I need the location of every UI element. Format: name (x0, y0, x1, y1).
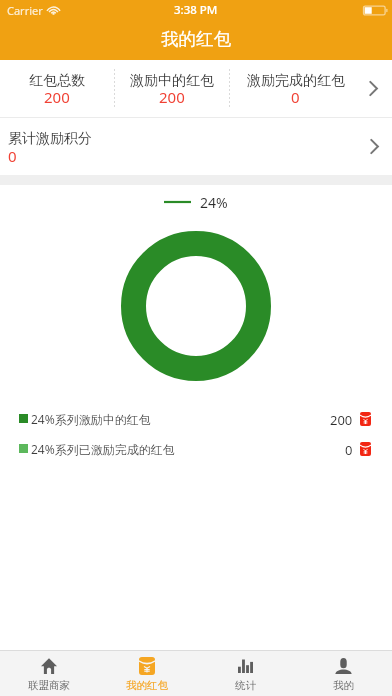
staticText: Carrier (7, 3, 43, 18)
staticText: 24%系列已激励完成的红包 (31, 441, 175, 456)
button[interactable]: 查看累计激励积分 (362, 118, 392, 175)
staticText: 我的红包 (126, 679, 168, 692)
staticText: 200 (159, 87, 185, 107)
staticText: 激励中的红包 (130, 72, 214, 90)
staticText: 24%系列激励中的红包 (31, 411, 151, 426)
staticText: 统计 (235, 679, 256, 692)
button[interactable]: 联盟商家 (0, 651, 98, 696)
button[interactable]: 统计 (196, 651, 294, 696)
staticText: 3:38 PM (174, 2, 218, 18)
staticText: 0 (8, 146, 17, 166)
button[interactable]: 我的红包 (98, 651, 196, 696)
staticText: 200 (330, 411, 353, 426)
button[interactable]: 累计激励积分 (0, 118, 392, 175)
staticText: 我的红包 (161, 28, 231, 50)
staticText: 联盟商家 (28, 679, 70, 692)
button[interactable]: 红包总数 (0, 60, 392, 117)
staticText: 24% (200, 193, 228, 212)
staticText: 0 (291, 87, 300, 107)
staticText: 激励完成的红包 (247, 72, 345, 90)
staticText: 0 (345, 441, 353, 456)
staticText: 200 (44, 87, 70, 107)
staticText: 红包总数 (29, 72, 85, 90)
button[interactable]: 我的 (294, 651, 392, 696)
button[interactable]: 查看红包明细 (361, 60, 392, 117)
staticText: 累计激励积分 (8, 130, 92, 148)
staticText: 我的 (333, 679, 354, 692)
